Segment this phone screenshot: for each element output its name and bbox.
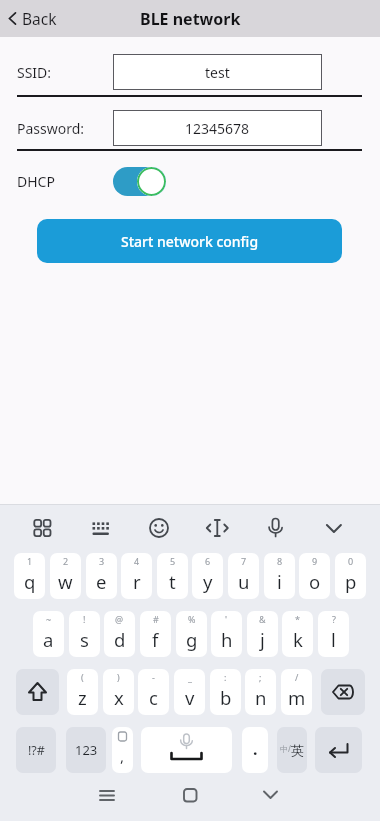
staticText: 4 xyxy=(134,555,140,567)
staticText: : xyxy=(224,671,227,683)
button[interactable]: 3 xyxy=(86,553,117,599)
staticText: 6 xyxy=(205,555,211,567)
button[interactable] xyxy=(113,167,166,196)
button[interactable]: , xyxy=(112,727,133,773)
button[interactable]: 123 xyxy=(66,727,106,773)
staticText: 3 xyxy=(99,555,105,567)
staticText: !?# xyxy=(28,742,45,759)
staticText: @ xyxy=(115,613,124,625)
staticText: y xyxy=(203,569,213,594)
button[interactable]: # xyxy=(140,611,171,657)
staticText: ; xyxy=(259,671,262,683)
button[interactable]: 中/ xyxy=(277,727,307,773)
button[interactable]: ? xyxy=(318,611,349,657)
button[interactable]: * xyxy=(282,611,313,657)
staticText: ) xyxy=(117,671,120,683)
button[interactable] xyxy=(256,508,296,548)
button[interactable]: 1 xyxy=(14,553,45,599)
button[interactable]: !?# xyxy=(16,727,56,773)
staticText: v xyxy=(185,685,195,710)
staticText: 123 xyxy=(75,741,98,759)
button[interactable]: 5 xyxy=(157,553,188,599)
button[interactable]: - xyxy=(138,669,169,715)
button[interactable]: . xyxy=(242,727,268,773)
button[interactable] xyxy=(16,669,59,715)
button[interactable]: ; xyxy=(245,669,276,715)
staticText: Start network config xyxy=(121,232,259,251)
staticText: a xyxy=(43,627,54,652)
button[interactable]: 4 xyxy=(121,553,152,599)
button[interactable]: 8 xyxy=(264,553,295,599)
staticText: n xyxy=(255,685,267,710)
staticText: t xyxy=(169,569,176,594)
button[interactable]: _ xyxy=(174,669,205,715)
staticText: s xyxy=(80,627,89,652)
button[interactable]: ) xyxy=(103,669,134,715)
staticText: j xyxy=(260,627,265,652)
staticText: . xyxy=(253,738,258,760)
button[interactable]: & xyxy=(247,611,278,657)
button[interactable] xyxy=(315,727,362,773)
staticText: g xyxy=(186,627,198,652)
button[interactable]: 7 xyxy=(228,553,259,599)
staticText: m xyxy=(288,685,306,710)
button[interactable] xyxy=(174,781,206,813)
button[interactable]: 9 xyxy=(299,553,330,599)
staticText: _ xyxy=(188,671,192,683)
staticText: * xyxy=(295,613,300,625)
staticText: d xyxy=(114,627,126,652)
staticText: 0 xyxy=(348,555,354,567)
staticText: b xyxy=(220,685,232,710)
button[interactable]: 12345678 xyxy=(113,110,322,146)
staticText: BLE network xyxy=(140,8,241,30)
button[interactable]: ! xyxy=(69,611,100,657)
button[interactable] xyxy=(321,669,365,715)
button[interactable] xyxy=(139,508,179,548)
button[interactable]: ' xyxy=(211,611,242,657)
staticText: x xyxy=(114,685,124,710)
staticText: h xyxy=(221,627,233,652)
staticText: k xyxy=(293,627,303,652)
staticText: Password: xyxy=(17,119,85,138)
staticText: i xyxy=(277,569,282,594)
button[interactable]: : xyxy=(210,669,241,715)
button[interactable] xyxy=(81,508,121,548)
staticText: 12345678 xyxy=(185,119,250,138)
staticText: q xyxy=(24,569,36,594)
staticText: 2 xyxy=(63,555,69,567)
staticText: u xyxy=(238,569,250,594)
button[interactable]: ( xyxy=(67,669,98,715)
staticText: - xyxy=(152,671,155,683)
button[interactable]: Back xyxy=(0,0,70,37)
staticText: ~ xyxy=(46,613,52,625)
staticText: test xyxy=(205,63,230,82)
button[interactable] xyxy=(141,727,232,773)
button[interactable] xyxy=(197,508,237,548)
button[interactable]: Start network config xyxy=(37,219,342,263)
button[interactable]: test xyxy=(113,54,322,90)
staticText: 英 xyxy=(291,742,304,758)
staticText: r xyxy=(133,569,141,594)
staticText: 中/ xyxy=(280,743,291,754)
button[interactable]: % xyxy=(176,611,207,657)
staticText: 9 xyxy=(312,555,318,567)
staticText: Back xyxy=(22,8,57,29)
button[interactable]: 2 xyxy=(50,553,81,599)
button[interactable]: @ xyxy=(104,611,135,657)
button[interactable] xyxy=(254,781,287,813)
staticText: ' xyxy=(225,613,228,625)
staticText: p xyxy=(345,569,357,594)
button[interactable] xyxy=(90,781,124,813)
staticText: z xyxy=(78,685,87,710)
staticText: ( xyxy=(81,671,84,683)
button[interactable]: 0 xyxy=(335,553,366,599)
button[interactable]: ~ xyxy=(33,611,64,657)
button[interactable]: 6 xyxy=(192,553,223,599)
staticText: & xyxy=(259,613,266,625)
button[interactable] xyxy=(22,508,62,548)
button[interactable] xyxy=(314,508,354,548)
staticText: 1 xyxy=(27,555,33,567)
staticText: 7 xyxy=(241,555,247,567)
button[interactable]: / xyxy=(281,669,312,715)
staticText: l xyxy=(331,627,336,652)
